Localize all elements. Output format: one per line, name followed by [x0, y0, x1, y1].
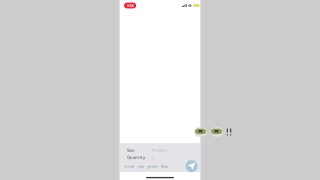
button[interactable]: blue: [161, 163, 168, 169]
button[interactable]: small: [124, 163, 134, 169]
staticText: 2: [152, 154, 154, 160]
staticText: Quantity: [127, 154, 145, 160]
button[interactable]: cap: [138, 163, 144, 169]
staticText: blue: [161, 163, 168, 169]
button[interactable]: green: [147, 163, 157, 169]
staticText: green: [147, 163, 157, 169]
staticText: 9:54: [127, 3, 134, 8]
button[interactable]: Size: [127, 147, 199, 154]
staticText: small: [124, 163, 134, 169]
staticText: Medium: [152, 147, 167, 153]
staticText: cap: [138, 163, 144, 169]
button[interactable]: Quantity: [127, 154, 199, 161]
staticText: Size: [127, 147, 134, 153]
button[interactable]: Send: [185, 160, 197, 172]
